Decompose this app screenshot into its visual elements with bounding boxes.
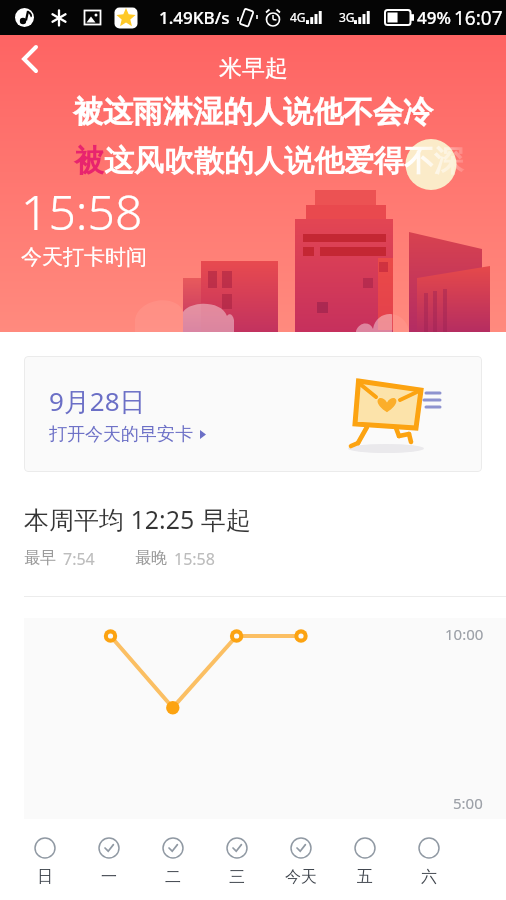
staticText: 16:07 — [454, 5, 503, 31]
staticText: 5:00 — [453, 793, 483, 813]
staticText: 米早起 — [219, 54, 288, 83]
button[interactable]: 五 — [333, 823, 397, 900]
button[interactable]: 六 — [397, 823, 461, 900]
button[interactable]: 二 — [141, 823, 205, 900]
staticText: 10:00 — [445, 624, 484, 644]
staticText: 今天 — [285, 867, 317, 887]
button[interactable]: 三 — [205, 823, 269, 900]
staticText: 六 — [421, 867, 437, 887]
staticText: 7:54 — [63, 548, 95, 570]
staticText: 最早 — [24, 548, 56, 568]
staticText: 15:58 — [174, 548, 215, 570]
staticText: 五 — [357, 867, 373, 887]
staticText: 一 — [101, 867, 117, 887]
button[interactable]: 9月28日 — [24, 356, 482, 472]
staticText: 15:58 — [21, 179, 143, 244]
staticText: 最晚 — [135, 548, 167, 568]
staticText: 今天打卡时间 — [21, 244, 147, 270]
staticText: 被 — [74, 142, 104, 180]
staticText: 3G — [339, 9, 355, 25]
staticText: 三 — [229, 867, 245, 887]
staticText: 日 — [37, 867, 53, 887]
button[interactable]: 今天 — [269, 823, 333, 900]
button[interactable]: Back — [6, 35, 54, 83]
staticText: 49% — [417, 6, 451, 29]
button[interactable]: 一 — [77, 823, 141, 900]
button[interactable]: 日 — [13, 823, 77, 900]
staticText: 被这雨淋湿的人说他不会冷 — [0, 93, 506, 131]
staticText: 9月28日 — [49, 383, 146, 419]
staticText: 1.49KB/s — [159, 6, 230, 29]
staticText: 打开今天的早安卡 — [49, 423, 193, 446]
staticText: 二 — [165, 867, 181, 887]
staticText: 本周平均 12:25 早起 — [24, 502, 251, 536]
staticText: 这风吹散的人说他爱得不深 — [104, 142, 464, 180]
staticText: 4G — [290, 9, 306, 25]
